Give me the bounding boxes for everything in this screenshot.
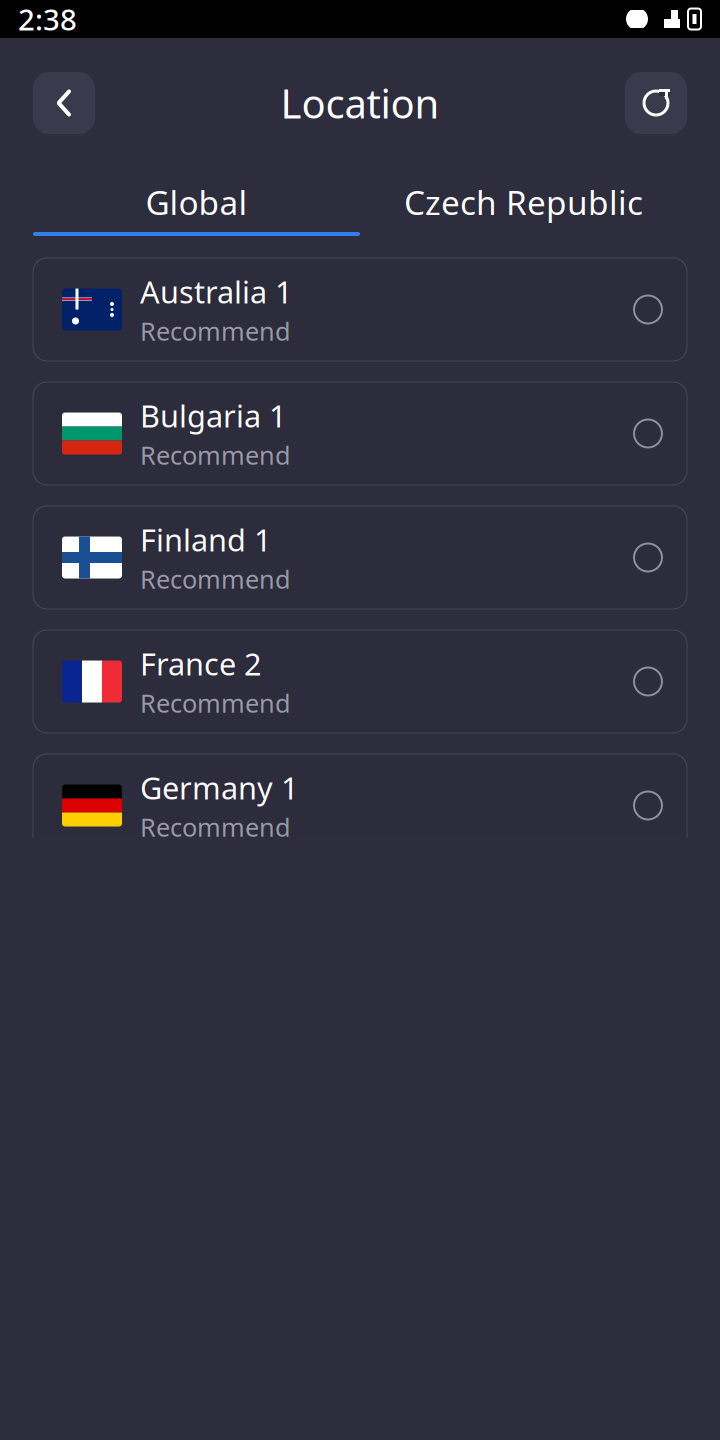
staticText: Australia 1	[140, 271, 293, 312]
staticText: Recommend	[140, 314, 291, 348]
staticText: Recommend	[140, 810, 291, 844]
button[interactable]: Refresh	[625, 72, 687, 134]
button[interactable]: Finland 1	[33, 506, 687, 609]
staticText: France 2	[140, 643, 262, 684]
staticText: Global	[145, 180, 247, 224]
staticText: 2:38	[18, 0, 77, 38]
staticText: Recommend	[140, 562, 291, 596]
staticText: Bulgaria 1	[140, 395, 287, 436]
button[interactable]: Back	[33, 72, 95, 134]
staticText: Germany 1	[140, 767, 299, 808]
button[interactable]: Germany 1	[33, 754, 687, 857]
staticText: Finland 1	[140, 519, 272, 560]
button[interactable]: Czech Republic	[360, 172, 687, 232]
button[interactable]: Bulgaria 1	[33, 382, 687, 485]
staticText: Location	[280, 76, 439, 129]
staticText: Recommend	[140, 438, 291, 472]
staticText: Czech Republic	[404, 180, 643, 224]
button[interactable]: Australia 1	[33, 258, 687, 361]
button[interactable]: France 2	[33, 630, 687, 733]
staticText: Recommend	[140, 686, 291, 720]
button[interactable]: Global	[33, 172, 360, 232]
